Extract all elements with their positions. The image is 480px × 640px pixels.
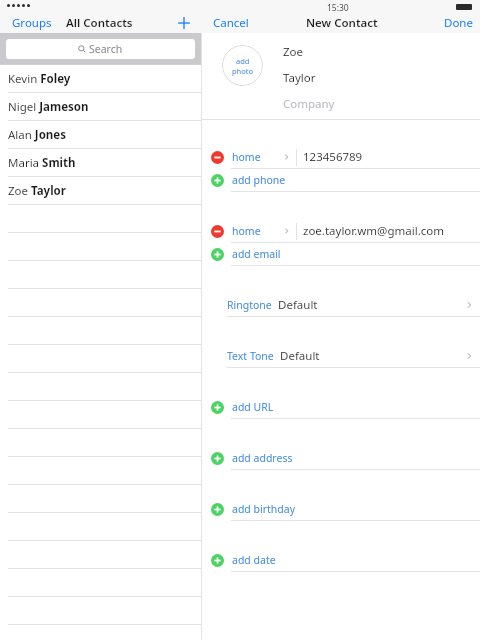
button[interactable]: Done — [440, 13, 477, 33]
staticText: Default — [280, 348, 320, 364]
staticText: Taylor — [283, 70, 316, 86]
button[interactable]: Nigel Jameson — [0, 93, 201, 121]
button[interactable]: Remove field — [202, 146, 480, 169]
button[interactable]: Remove field — [202, 220, 480, 243]
other: Add field — [211, 503, 224, 516]
staticText: photo — [232, 66, 254, 76]
button[interactable]: Add field — [202, 243, 480, 266]
button[interactable]: Zoe — [283, 39, 480, 65]
button[interactable]: Kevin Foley — [0, 65, 201, 93]
staticText: home — [232, 150, 261, 164]
staticText: add address — [232, 451, 293, 465]
staticText: add birthday — [232, 502, 296, 516]
other: Add field — [211, 174, 224, 187]
staticText: New Contact — [306, 15, 378, 31]
other: Remove field — [211, 225, 224, 238]
button[interactable]: Groups — [8, 13, 56, 33]
button[interactable]: Add field — [202, 396, 480, 419]
staticText: Maria Smith — [8, 155, 76, 171]
staticText: Company — [283, 96, 335, 112]
staticText: Zoe Taylor — [8, 183, 66, 199]
button[interactable]: Add field — [202, 498, 480, 521]
button[interactable]: Company — [283, 91, 480, 117]
button[interactable]: Alan Jones — [0, 121, 201, 149]
button[interactable]: Add field — [202, 169, 480, 192]
button[interactable]: Zoe Taylor — [0, 177, 201, 205]
staticText: home — [232, 224, 261, 238]
button[interactable]: Add contact — [174, 13, 194, 33]
other: Add field — [211, 248, 224, 261]
staticText: All Contacts — [66, 15, 133, 31]
staticText: Zoe — [283, 44, 304, 60]
other: Remove field — [211, 151, 224, 164]
other: Add field — [211, 401, 224, 414]
staticText: Nigel Jameson — [8, 99, 89, 115]
staticText: add — [236, 56, 250, 66]
button[interactable]: Add field — [202, 447, 480, 470]
staticText: 15:30 — [327, 2, 349, 14]
button[interactable]: Search — [6, 39, 195, 59]
staticText: Groups — [12, 15, 52, 31]
other: Add field — [211, 452, 224, 465]
staticText: Default — [278, 297, 318, 313]
staticText: Text Tone — [227, 349, 274, 363]
button[interactable]: Ringtone — [202, 294, 480, 317]
staticText: add email — [232, 247, 281, 261]
staticText: Search — [89, 42, 123, 56]
staticText: add URL — [232, 400, 274, 414]
staticText: Alan Jones — [8, 127, 66, 143]
staticText: zoe.taylor.wm@gmail.com — [303, 223, 444, 239]
staticText: Done — [444, 15, 473, 31]
button[interactable]: Text Tone — [202, 345, 480, 368]
staticText: 123456789 — [303, 149, 363, 165]
staticText: Cancel — [213, 15, 249, 31]
staticText: Ringtone — [227, 298, 272, 312]
staticText: add phone — [232, 173, 286, 187]
staticText: add date — [232, 553, 276, 567]
button[interactable]: add — [222, 45, 263, 86]
other: Add field — [211, 554, 224, 567]
button[interactable]: Add field — [202, 549, 480, 572]
button[interactable]: Maria Smith — [0, 149, 201, 177]
staticText: Kevin Foley — [8, 71, 71, 87]
button[interactable]: Taylor — [283, 65, 480, 91]
button[interactable]: Cancel — [209, 13, 253, 33]
